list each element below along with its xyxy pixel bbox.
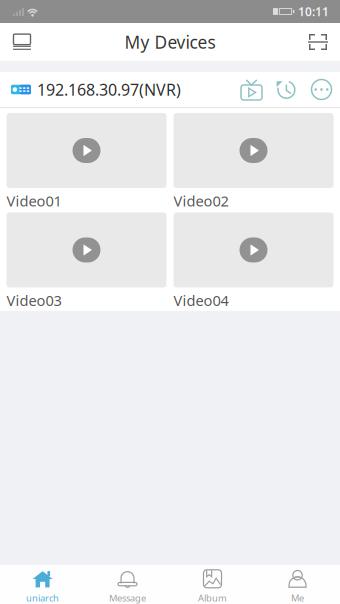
button[interactable]: Live view (234, 72, 269, 107)
staticText: 192.168.30.97(NVR) (37, 79, 181, 100)
staticText: 10:11 (298, 3, 329, 19)
button[interactable]: Video04 (173, 212, 333, 287)
staticText: Video04 (173, 290, 228, 310)
button[interactable]: Video03 (6, 212, 166, 287)
button[interactable]: uniarch (0, 565, 85, 604)
staticText: Video02 (173, 191, 228, 210)
button[interactable]: Video01 (6, 113, 166, 188)
staticText: Me (291, 592, 304, 604)
staticText: Message (109, 592, 146, 604)
button[interactable]: Me (255, 565, 340, 604)
staticText: Album (198, 592, 227, 604)
staticText: Video01 (6, 191, 61, 210)
button[interactable]: Video02 (173, 113, 333, 188)
button[interactable]: Playback (269, 72, 304, 107)
staticText: Video03 (6, 290, 61, 310)
button[interactable]: More (304, 72, 339, 107)
button[interactable]: Album (170, 565, 255, 604)
button[interactable]: Scan (298, 23, 338, 61)
staticText: My Devices (124, 30, 215, 53)
button[interactable]: Devices (2, 23, 42, 61)
staticText: uniarch (26, 592, 59, 604)
button[interactable]: Message (85, 565, 170, 604)
